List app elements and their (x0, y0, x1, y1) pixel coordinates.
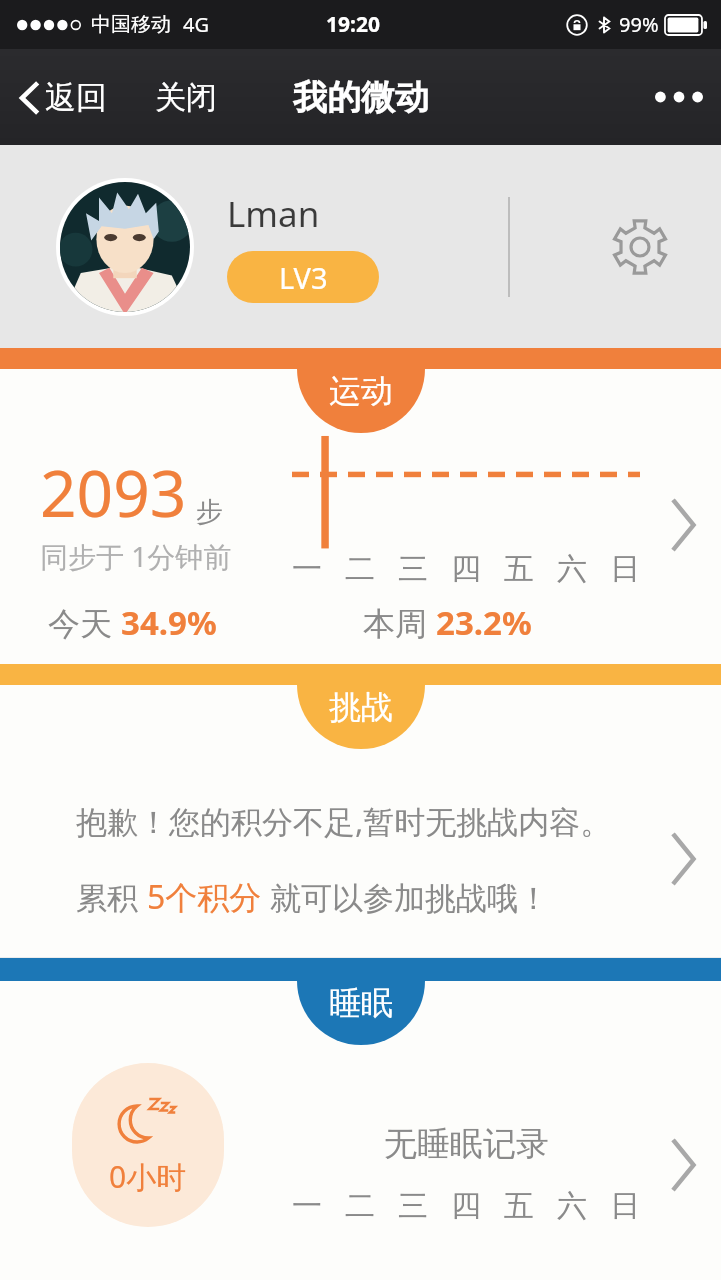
staticText: 我的微动 (293, 76, 429, 119)
staticText: 日 (610, 1187, 640, 1225)
staticText: 三 (398, 1187, 428, 1225)
staticText: 六 (557, 1187, 587, 1225)
staticText: 抱歉！您的积分不足,暂时无挑战内容。 (76, 800, 612, 842)
button[interactable]: 2093 (0, 433, 721, 664)
staticText: 19:20 (326, 10, 380, 39)
staticText: 今天 (48, 601, 121, 645)
staticText: 累积 (76, 876, 147, 918)
staticText: 挑战 (329, 687, 393, 727)
button[interactable]: 返回 (0, 70, 117, 125)
button[interactable]: 0小时 (0, 1045, 721, 1280)
button[interactable]: 关闭 (151, 74, 221, 121)
staticText: 二 (345, 1187, 375, 1225)
staticText: 三 (398, 550, 428, 588)
staticText: 五 (504, 1187, 534, 1225)
staticText: 睡眠 (329, 983, 393, 1023)
staticText: 中国移动 (91, 12, 171, 37)
staticText: 23.2% (436, 600, 532, 645)
staticText: 一 (292, 550, 322, 588)
button[interactable]: LV3 (227, 251, 379, 303)
staticText: 二 (345, 550, 375, 588)
staticText: 一 (292, 1187, 322, 1225)
staticText: 五 (504, 550, 534, 588)
button[interactable]: More options (637, 77, 721, 117)
staticText: 四 (451, 1187, 481, 1225)
button[interactable]: 抱歉！您的积分不足,暂时无挑战内容。 (0, 749, 721, 957)
staticText: 六 (557, 550, 587, 588)
staticText: 返回 (45, 78, 107, 117)
staticText: 运动 (329, 371, 393, 411)
staticText: 0小时 (109, 1156, 187, 1197)
staticText: 34.9% (121, 600, 217, 645)
staticText: 日 (610, 550, 640, 588)
staticText: 本周 (363, 601, 436, 645)
staticText: 就可以参加挑战哦！ (262, 876, 550, 918)
staticText: 2093 (40, 449, 187, 536)
staticText: LV3 (279, 258, 328, 297)
staticText: 同步于 1分钟前 (40, 537, 232, 575)
staticText: 99% (619, 11, 659, 38)
staticText: 4G (183, 11, 209, 38)
staticText: Lman (227, 190, 320, 238)
button[interactable]: Settings (611, 218, 721, 276)
staticText: 四 (451, 550, 481, 588)
button[interactable]: Lman (0, 145, 721, 348)
staticText: 无睡眠记录 (384, 1123, 549, 1165)
staticText: 5个积分 (147, 875, 262, 919)
staticText: 步 (196, 495, 223, 529)
